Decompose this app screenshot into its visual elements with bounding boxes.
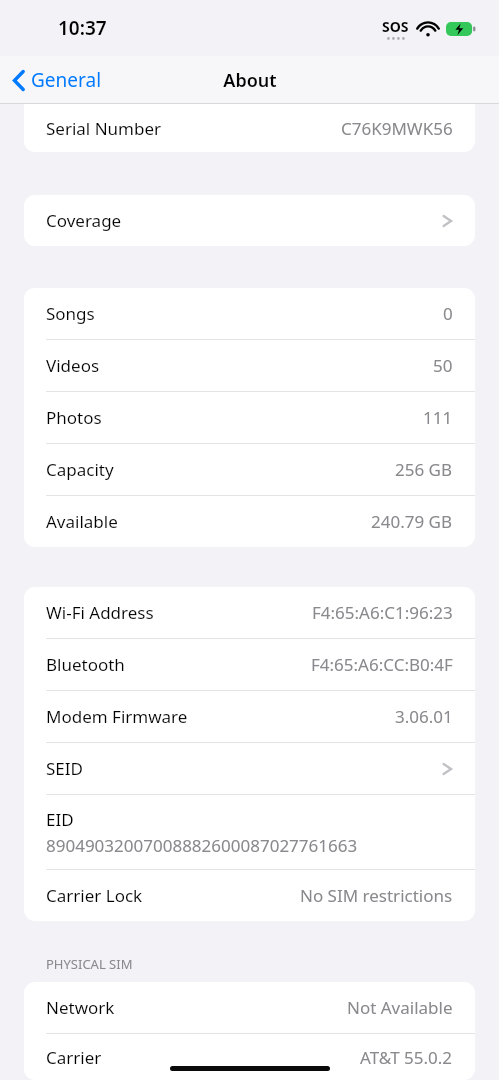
staticText: Network [46, 996, 115, 1019]
staticText: 240.79 GB [371, 510, 453, 533]
button[interactable]: Wi-Fi Address [24, 587, 475, 638]
staticText: 111 [423, 406, 453, 429]
button[interactable]: Available [24, 496, 475, 547]
button[interactable]: Carrier [24, 1034, 475, 1080]
staticText: Coverage [46, 209, 122, 232]
staticText: 0 [443, 302, 453, 325]
staticText: Wi-Fi Address [46, 601, 154, 624]
staticText: 3.06.01 [395, 705, 453, 728]
staticText: 256 GB [395, 458, 453, 481]
button[interactable]: Songs [24, 288, 475, 339]
button[interactable]: Videos [24, 340, 475, 391]
staticText: General [31, 67, 102, 93]
staticText: AT&T 55.0.2 [360, 1046, 453, 1069]
button[interactable]: General [0, 61, 112, 99]
button[interactable]: SEID [24, 743, 475, 794]
staticText: No SIM restrictions [300, 884, 453, 907]
button[interactable]: Coverage [24, 195, 475, 246]
staticText: EID [46, 808, 74, 831]
staticText: Videos [46, 354, 100, 377]
staticText: 89049032007008882600087027761663 [46, 834, 358, 857]
staticText: F4:65:A6:C1:96:23 [312, 601, 453, 624]
staticText: Carrier Lock [46, 884, 143, 907]
staticText: 10:37 [58, 15, 107, 41]
staticText: SOS [382, 17, 409, 36]
staticText: SEID [46, 757, 83, 780]
staticText: Bluetooth [46, 653, 125, 676]
staticText: 50 [433, 354, 453, 377]
button[interactable]: EID [24, 795, 475, 869]
staticText: About [223, 68, 277, 93]
staticText: Capacity [46, 458, 114, 481]
staticText: Modem Firmware [46, 705, 188, 728]
staticText: Carrier [46, 1046, 102, 1069]
button[interactable]: Photos [24, 392, 475, 443]
button[interactable]: Serial Number [24, 104, 475, 152]
staticText: C76K9MWK56 [341, 117, 453, 140]
button[interactable]: Capacity [24, 444, 475, 495]
button[interactable]: Network [24, 982, 475, 1033]
staticText: Available [46, 510, 118, 533]
staticText: Not Available [347, 996, 453, 1019]
staticText: F4:65:A6:CC:B0:4F [311, 653, 453, 676]
staticText: Serial Number [46, 117, 162, 140]
staticText: Photos [46, 406, 102, 429]
staticText: PHYSICAL SIM [46, 955, 133, 973]
button[interactable]: Bluetooth [24, 639, 475, 690]
button[interactable]: Modem Firmware [24, 691, 475, 742]
button[interactable]: Carrier Lock [24, 870, 475, 921]
staticText: Songs [46, 302, 95, 325]
